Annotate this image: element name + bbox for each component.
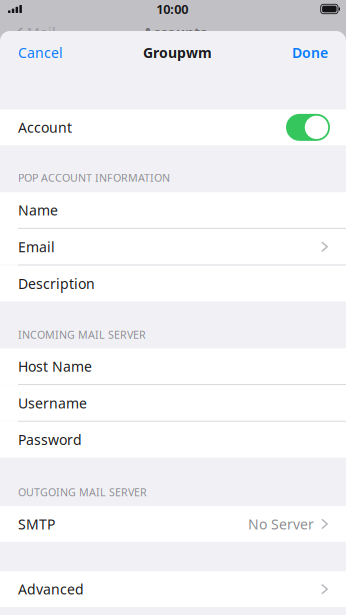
button[interactable]: Password [0,422,346,457]
button[interactable]: Username [0,385,346,421]
staticText: Description [18,274,95,293]
button[interactable]: Account [0,109,346,145]
staticText: Email [18,237,55,256]
button[interactable]: Cancel [18,36,63,68]
staticText: Name [18,200,58,220]
staticText: No Server [248,514,314,533]
button[interactable]: Host Name [0,348,346,384]
staticText: Host Name [18,357,92,376]
staticText: Username [18,393,87,412]
button[interactable]: Email [0,229,346,265]
button[interactable]: SMTP [0,506,346,542]
staticText: INCOMING MAIL SERVER [18,327,146,342]
button[interactable]: Description [0,266,346,301]
staticText: OUTGOING MAIL SERVER [18,485,147,499]
button[interactable]: Advanced [0,571,346,607]
staticText: Cancel [18,43,63,62]
staticText: Groupwm [143,43,212,62]
button[interactable]: Done [292,36,328,68]
staticText: Accounts [143,23,207,42]
staticText: Mail [27,23,56,42]
staticText: Done [292,43,328,62]
button[interactable]: Name [0,192,346,228]
staticText: SMTP [18,514,55,533]
staticText: Password [18,430,82,449]
staticText: 10:00 [156,0,188,18]
staticText: Account [18,118,72,137]
staticText: Advanced [18,580,84,599]
staticText: POP ACCOUNT INFORMATION [18,170,170,185]
